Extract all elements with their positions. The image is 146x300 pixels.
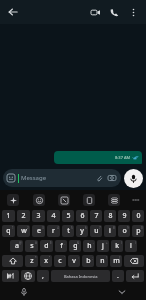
button[interactable]: Call [106, 4, 122, 20]
staticText: r [52, 226, 55, 236]
staticText: t [67, 226, 70, 236]
button[interactable]: g [69, 240, 81, 252]
button[interactable]: 7 [90, 210, 102, 222]
button[interactable]: Enter [126, 270, 144, 282]
button[interactable]: j [97, 240, 109, 252]
staticText: m [113, 256, 120, 266]
staticText: 9 [127, 226, 129, 230]
button[interactable]: o [118, 225, 130, 237]
button[interactable]: Collapse [97, 284, 146, 300]
button[interactable]: 8:37 AM [54, 151, 142, 164]
staticText: 6 [80, 211, 85, 221]
button[interactable]: d [40, 240, 53, 252]
staticText: - [93, 241, 94, 245]
staticText: v [72, 256, 76, 266]
staticText: " [49, 256, 51, 260]
button[interactable]: Voice message [124, 169, 143, 188]
button[interactable]: y [76, 225, 88, 237]
button[interactable]: 3 [32, 210, 45, 222]
button[interactable]: 6 [76, 210, 88, 222]
button[interactable]: Themes [101, 190, 126, 209]
button[interactable]: p [132, 225, 144, 237]
staticText: 8 [113, 226, 115, 230]
button[interactable]: n [96, 255, 108, 267]
button[interactable]: 9 [118, 210, 130, 222]
button[interactable]: Sticker [0, 190, 26, 209]
button[interactable]: f [55, 240, 67, 252]
button[interactable]: Back [5, 4, 21, 20]
button[interactable]: Symbols [2, 270, 19, 282]
staticText: 4 [51, 211, 56, 221]
button[interactable]: More [126, 190, 146, 209]
button[interactable]: Shift [2, 255, 23, 267]
button[interactable]: h [83, 240, 95, 252]
button[interactable]: t [62, 225, 74, 237]
staticText: ! [106, 256, 107, 260]
button[interactable]: l [125, 240, 137, 252]
button[interactable]: GIF [51, 190, 76, 209]
button[interactable]: x [40, 255, 52, 267]
button[interactable]: 1 [2, 210, 15, 222]
staticText: 2 [27, 226, 29, 230]
button[interactable]: i [104, 225, 116, 237]
staticText: ( [121, 241, 122, 245]
staticText: n [100, 256, 105, 266]
staticText: q [6, 226, 11, 236]
staticText: ? [119, 256, 121, 260]
button[interactable]: , [37, 270, 49, 282]
staticText: 3 [42, 226, 44, 230]
button[interactable]: k [111, 240, 123, 252]
button[interactable]: a [10, 240, 23, 252]
button[interactable]: Video call [87, 4, 103, 20]
staticText: @ [19, 241, 22, 245]
button[interactable]: q [2, 225, 15, 237]
button[interactable]: u [90, 225, 102, 237]
staticText: z [30, 256, 34, 266]
button[interactable]: 8 [104, 210, 116, 222]
button[interactable]: Bahasa Indonesia [51, 270, 110, 282]
button[interactable]: 4 [47, 210, 60, 222]
button[interactable]: Backspace [124, 255, 144, 267]
button[interactable]: Voice input [0, 284, 48, 300]
button[interactable]: Clipboard [76, 190, 101, 209]
staticText: ; [92, 256, 93, 260]
staticText: 5 [66, 211, 71, 221]
button[interactable]: c [54, 255, 66, 267]
button[interactable]: v [68, 255, 80, 267]
staticText: y [80, 226, 84, 236]
button[interactable]: . [112, 270, 124, 282]
button[interactable]: z [25, 255, 38, 267]
staticText: 8 [108, 211, 113, 221]
button[interactable]: m [110, 255, 122, 267]
staticText: w [21, 226, 27, 236]
button[interactable]: Emoji [26, 190, 51, 209]
button[interactable]: s [25, 240, 38, 252]
staticText: u [94, 226, 99, 236]
staticText: . [117, 271, 119, 281]
staticText: a [15, 241, 19, 251]
staticText: 2 [21, 211, 26, 221]
staticText: * [35, 256, 37, 260]
button[interactable]: r [47, 225, 60, 237]
button[interactable]: b [82, 255, 94, 267]
button[interactable]: 5 [62, 210, 74, 222]
staticText: 7 [99, 226, 101, 230]
staticText: 9 [122, 211, 127, 221]
staticText: k [115, 241, 119, 251]
button[interactable]: More options [125, 4, 141, 20]
button[interactable]: 0 [132, 210, 144, 222]
staticText: Message [21, 174, 47, 182]
button[interactable]: Attach [94, 173, 104, 183]
button[interactable]: Message [3, 169, 121, 187]
button[interactable]: w [17, 225, 30, 237]
staticText: 1 [6, 211, 11, 221]
button[interactable]: 2 [17, 210, 30, 222]
button[interactable]: Camera [107, 173, 117, 183]
staticText: h [87, 241, 92, 251]
button[interactable]: Language [21, 270, 35, 282]
staticText: 6 [85, 226, 87, 230]
staticText: + [106, 241, 108, 245]
button[interactable]: e [32, 225, 45, 237]
staticText: Bahasa Indonesia [64, 274, 98, 279]
